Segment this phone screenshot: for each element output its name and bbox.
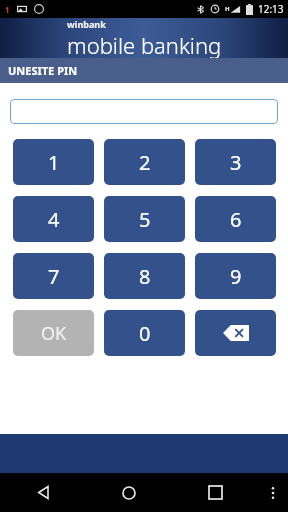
staticText: 1 — [48, 149, 60, 176]
staticText: winbank — [67, 18, 106, 30]
button[interactable]: Back — [0, 473, 86, 512]
button[interactable]: 6 — [195, 196, 276, 242]
button[interactable]: 1 — [13, 139, 94, 185]
staticText: 6 — [230, 206, 242, 233]
staticText: 9 — [230, 263, 242, 290]
button[interactable]: 8 — [104, 253, 185, 299]
button[interactable]: OK — [13, 310, 94, 356]
button[interactable]: 3 — [195, 139, 276, 185]
staticText: OK — [41, 321, 67, 346]
button[interactable]: 4 — [13, 196, 94, 242]
button[interactable]: Recent apps — [172, 473, 258, 512]
button[interactable]: 2 — [104, 139, 185, 185]
staticText: 2 — [139, 149, 151, 176]
button[interactable]: Home — [86, 473, 172, 512]
staticText: 3 — [230, 149, 242, 176]
staticText: 4 — [48, 206, 60, 233]
staticText: 7 — [48, 263, 60, 290]
staticText: 5 — [139, 206, 151, 233]
staticText: 1 — [5, 4, 10, 15]
button[interactable]: More options — [258, 473, 288, 512]
staticText: UNESITE PIN — [8, 63, 78, 78]
staticText: 12:13 — [258, 2, 284, 16]
button[interactable]: 0 — [104, 310, 185, 356]
button[interactable]: 5 — [104, 196, 185, 242]
staticText: 0 — [139, 320, 151, 347]
button[interactable]: 9 — [195, 253, 276, 299]
staticText: H — [225, 5, 230, 13]
staticText: 8 — [139, 263, 151, 290]
staticText: mobile banking — [67, 30, 222, 58]
button[interactable] — [10, 99, 278, 124]
button[interactable]: Backspace — [195, 310, 276, 356]
button[interactable]: 7 — [13, 253, 94, 299]
